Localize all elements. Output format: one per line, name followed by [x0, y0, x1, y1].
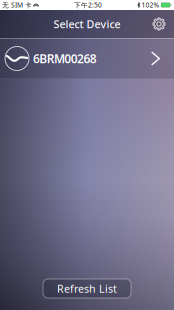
staticText: Refresh List: [57, 281, 117, 296]
button[interactable]: Settings: [144, 10, 174, 38]
button[interactable]: Refresh List: [43, 279, 131, 298]
button[interactable]: 6BRM00268: [0, 38, 174, 79]
staticText: Select Device: [53, 17, 120, 31]
staticText: 无 SIM 卡: [2, 1, 32, 9]
staticText: 102%: [142, 1, 160, 9]
staticText: 6BRM00268: [33, 50, 97, 66]
staticText: 下午2:50: [74, 1, 102, 9]
